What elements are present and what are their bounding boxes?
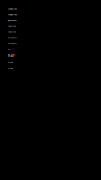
staticText: View profile	[8, 25, 16, 27]
staticText: Amelia Brown	[8, 14, 17, 16]
staticText: View profile	[8, 31, 16, 33]
staticText: 9:41	[8, 54, 15, 58]
staticText: Profile	[8, 62, 13, 63]
staticText: 9:41	[8, 48, 11, 50]
staticText: Amelia Brown	[8, 8, 17, 10]
staticText: Version 2.4.1	[8, 43, 17, 44]
staticText: Jane Cooper	[8, 19, 17, 21]
staticText: Version 2.4.1	[8, 37, 17, 39]
staticText: Profile	[8, 67, 13, 69]
